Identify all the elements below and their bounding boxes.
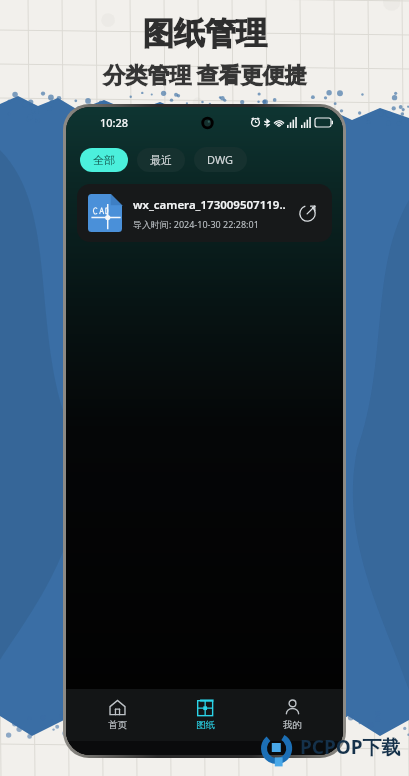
staticText: 10:28 — [100, 115, 129, 130]
button[interactable]: DWG — [194, 147, 247, 172]
staticText: 图纸管理 — [143, 14, 267, 53]
staticText: wx_camera_173009507119... — [133, 197, 287, 213]
staticText: 导入时间: 2024-10-30 22:28:01 — [133, 218, 259, 230]
staticText: 首页 — [108, 719, 127, 731]
staticText: DWG — [207, 152, 234, 167]
staticText: 我的 — [283, 719, 302, 731]
button[interactable]: 图纸 — [169, 695, 241, 735]
staticText: 图纸 — [196, 719, 215, 731]
button[interactable]: 我的 — [256, 695, 328, 735]
staticText: 最近 — [150, 153, 172, 167]
button[interactable]: 首页 — [81, 695, 153, 735]
staticText: PCPOP下载 — [300, 734, 401, 760]
button[interactable]: Share — [293, 199, 321, 227]
button[interactable]: wx_camera_173009507119... — [77, 184, 332, 242]
staticText: 分类管理 查看更便捷 — [103, 59, 307, 89]
staticText: 全部 — [93, 153, 115, 167]
button[interactable]: 最近 — [137, 148, 185, 172]
button[interactable]: 全部 — [80, 148, 128, 172]
